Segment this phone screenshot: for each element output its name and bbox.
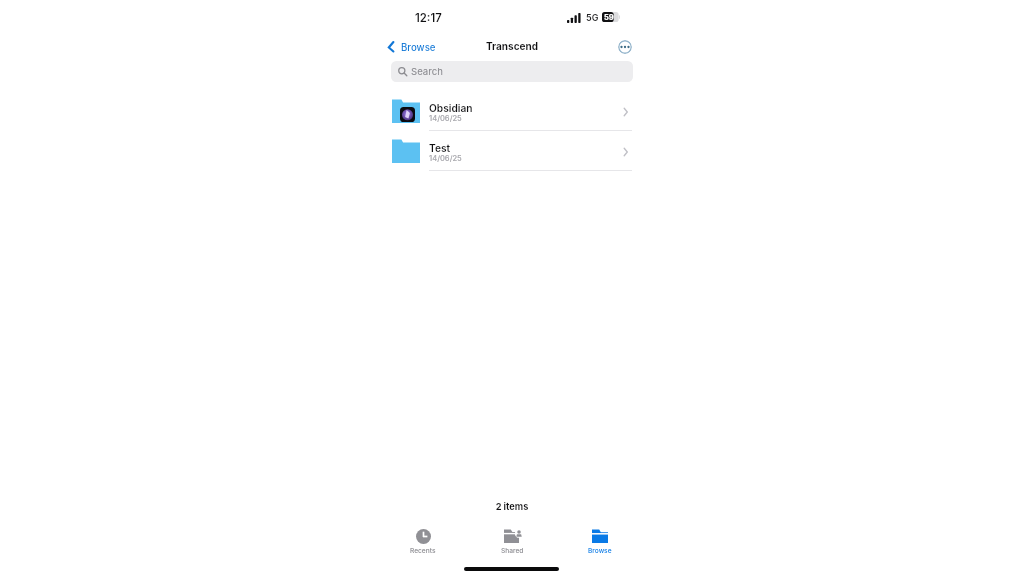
- staticText: 5G: [586, 12, 599, 23]
- staticText: Obsidian: [429, 102, 473, 114]
- button[interactable]: Search: [391, 61, 633, 82]
- button[interactable]: Recents: [391, 529, 455, 556]
- button[interactable]: Obsidian: [375, 90, 649, 131]
- staticText: Browse: [401, 42, 436, 54]
- staticText: Test: [429, 142, 451, 154]
- staticText: Transcend: [0, 40, 1024, 52]
- button[interactable]: More options: [618, 40, 632, 54]
- staticText: 12:17: [415, 11, 442, 25]
- staticText: Browse: [588, 547, 612, 555]
- button[interactable]: Browse: [383, 37, 436, 58]
- staticText: Shared: [501, 547, 524, 555]
- staticText: 14/06/25: [429, 154, 462, 163]
- staticText: 59: [604, 13, 614, 22]
- button[interactable]: Shared: [480, 529, 544, 556]
- button[interactable]: Test: [375, 130, 649, 171]
- button[interactable]: Browse: [568, 529, 632, 556]
- staticText: 2 items: [0, 501, 1024, 512]
- staticText: Search: [411, 66, 443, 78]
- staticText: 14/06/25: [429, 114, 462, 123]
- staticText: Recents: [410, 547, 436, 555]
